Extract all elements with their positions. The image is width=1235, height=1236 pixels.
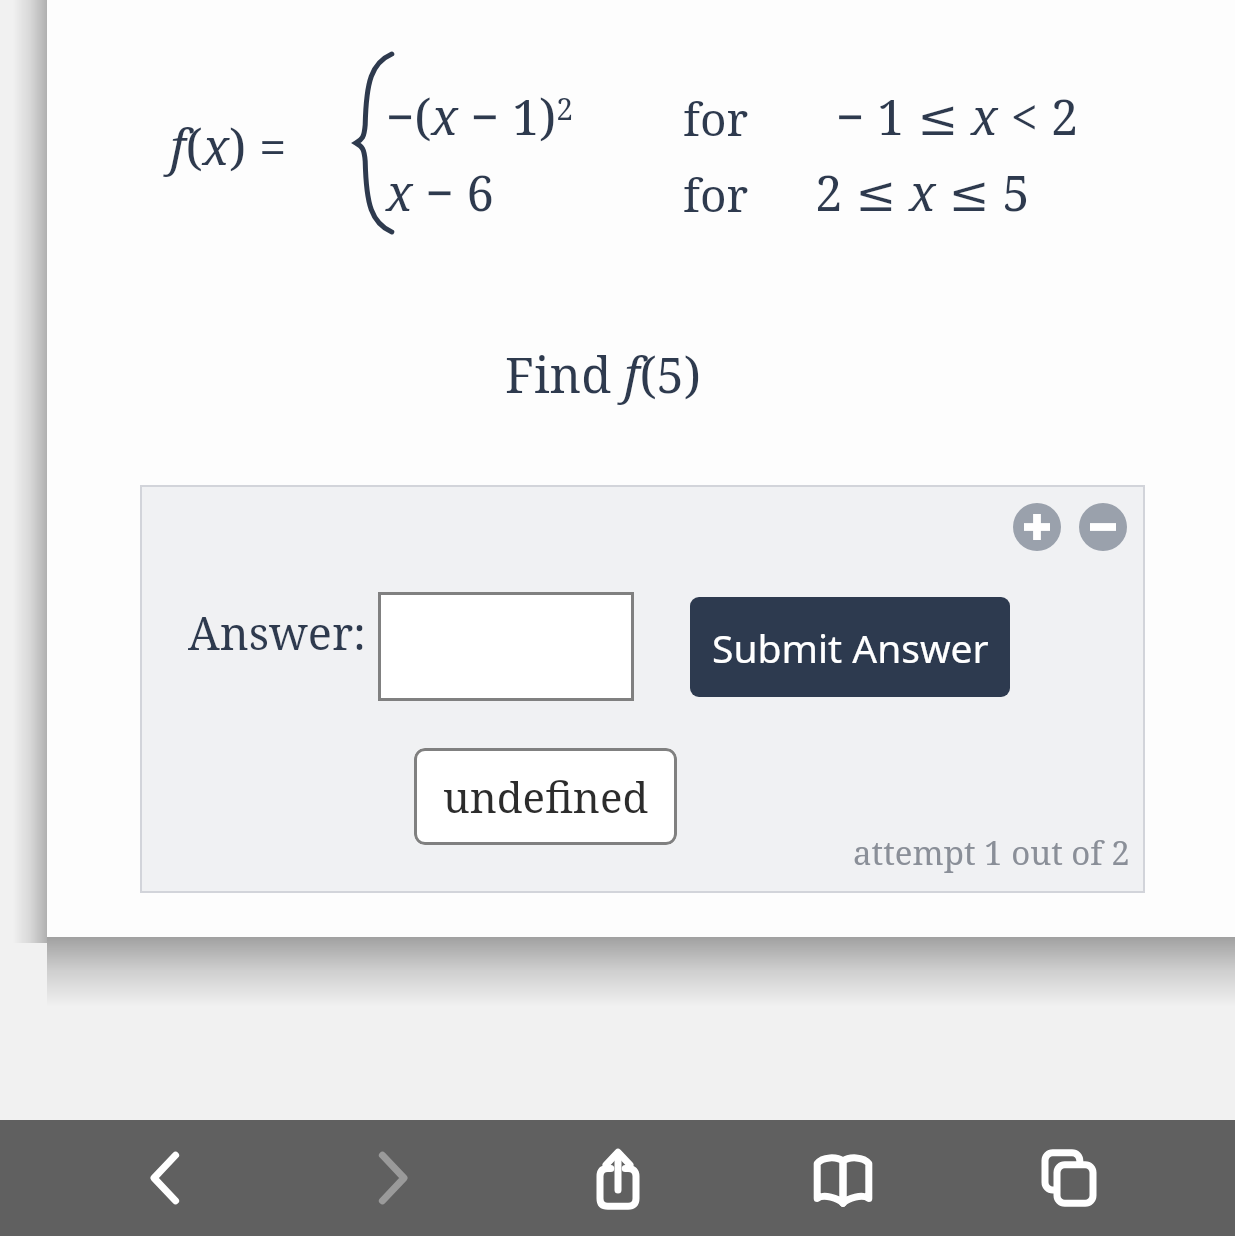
button[interactable]: Share — [558, 1120, 678, 1236]
staticText: −(x − 1)2 — [386, 83, 574, 150]
button[interactable]: Forward — [332, 1120, 452, 1236]
staticText: for — [683, 87, 749, 150]
staticText: attempt 1 out of 2 — [853, 830, 1130, 875]
staticText: Find f(5) — [505, 341, 701, 408]
button[interactable] — [378, 592, 634, 701]
button[interactable]: Bookmarks — [783, 1120, 903, 1236]
staticText: Submit Answer — [712, 621, 989, 674]
button[interactable]: Tabs — [1009, 1120, 1129, 1236]
staticText: f(x) = — [170, 113, 287, 180]
button[interactable]: Decrease size — [1079, 503, 1127, 551]
staticText: x − 6 — [386, 159, 494, 226]
staticText: for — [683, 163, 749, 226]
button[interactable]: undefined — [414, 748, 677, 845]
button[interactable]: Increase size — [1013, 503, 1061, 551]
staticText: Answer: — [188, 602, 366, 663]
button[interactable]: Back — [106, 1120, 226, 1236]
staticText: 2 ≤ x ≤ 5 — [815, 159, 1030, 226]
staticText: − 1 ≤ x < 2 — [836, 83, 1079, 150]
button[interactable]: Submit Answer — [690, 597, 1010, 697]
staticText: undefined — [443, 768, 649, 825]
